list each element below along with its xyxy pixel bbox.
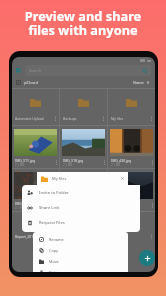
staticText: Backups — [63, 116, 77, 121]
staticText: Copy — [49, 248, 58, 253]
staticText: Preview and share files with anyone — [0, 7, 166, 39]
button[interactable]: Copy — [33, 245, 128, 256]
button[interactable]: My files — [108, 89, 155, 125]
button[interactable]: Search — [25, 65, 151, 76]
button[interactable]: Notes.docx — [60, 212, 107, 242]
staticText: Request Files — [39, 220, 65, 226]
button[interactable]: Close — [120, 176, 125, 181]
staticText: IMG_430.jpg — [111, 158, 131, 163]
staticText: IMG_443.jpg — [15, 201, 35, 206]
staticText: Search — [29, 68, 42, 73]
staticText: pCloud — [24, 80, 38, 86]
button[interactable]: IMG_448.jpg — [60, 169, 107, 211]
button[interactable]: Plan.pdf — [108, 212, 155, 242]
button[interactable]: IMG_443.jpg — [12, 169, 59, 211]
staticText: Report_2019.xlsx — [15, 234, 43, 239]
button[interactable]: Invite to Folder — [22, 185, 140, 200]
staticText: IMG_518.jpg — [63, 158, 83, 163]
staticText: Rename — [49, 237, 64, 242]
staticText: Share Link — [39, 205, 60, 211]
button[interactable]: Report_2019.xlsx — [12, 212, 59, 242]
button[interactable]: Backups — [60, 89, 107, 125]
staticText: Invite to Folder — [39, 190, 69, 196]
staticText: Move — [49, 259, 59, 264]
staticText: Delete — [49, 270, 61, 272]
button[interactable]: Request Files — [22, 215, 140, 230]
button[interactable]: Rename — [33, 234, 128, 245]
staticText: Name — [133, 80, 144, 85]
button[interactable]: Move — [33, 256, 128, 267]
button[interactable]: Add — [139, 250, 155, 266]
staticText: 2.1 MB — [63, 163, 73, 167]
button[interactable]: Share Link — [22, 200, 140, 215]
button[interactable]: Menu — [16, 68, 21, 73]
staticText: My files — [52, 176, 67, 181]
button[interactable]: IMG_452.jpg — [108, 169, 155, 211]
button[interactable]: My files — [37, 172, 128, 185]
button[interactable]: IMG_511.jpg — [12, 126, 59, 168]
button[interactable]: IMG_518.jpg — [60, 126, 107, 168]
button[interactable]: Delete — [33, 267, 128, 272]
staticText: My files — [111, 116, 124, 121]
staticText: 2.1 MB — [111, 163, 121, 167]
staticText: IMG_511.jpg — [15, 158, 35, 163]
button[interactable]: IMG_430.jpg — [108, 126, 155, 168]
staticText: 2.1 MB — [15, 163, 25, 167]
staticText: 2.1 MB — [15, 206, 25, 210]
button[interactable]: Automatic Upload — [12, 89, 59, 125]
staticText: Automatic Upload — [15, 116, 44, 121]
